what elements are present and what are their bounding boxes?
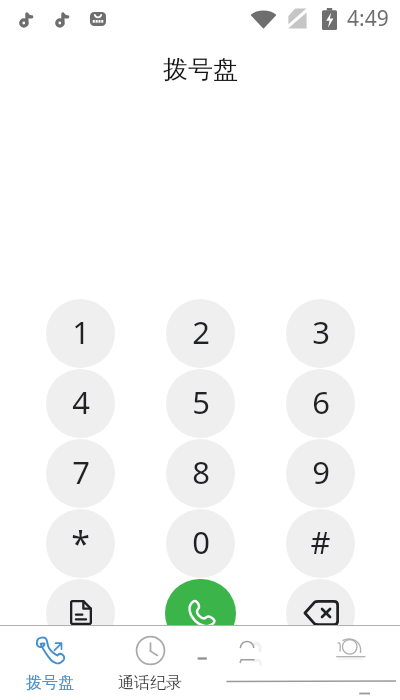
staticText: 8 (192, 451, 210, 493)
staticText: 9 (312, 451, 330, 493)
staticText: 拨号盘 (26, 673, 74, 693)
button[interactable]: Backspace (286, 579, 355, 648)
staticText: 拨号盘 (163, 54, 238, 85)
button[interactable]: 9 (286, 439, 355, 508)
staticText: 4:49 (347, 4, 389, 33)
button[interactable]: 3 (286, 299, 355, 368)
button[interactable]: 4 (46, 369, 115, 438)
button[interactable]: Note (46, 579, 115, 648)
button[interactable]: Tab (200, 625, 300, 700)
button[interactable]: 5 (166, 369, 235, 438)
staticText: 0 (192, 521, 210, 563)
staticText: # (310, 521, 331, 563)
staticText: 通话纪录 (118, 673, 182, 693)
button[interactable]: 7 (46, 439, 115, 508)
staticText: * (71, 520, 90, 566)
button[interactable]: Call (165, 579, 236, 648)
button[interactable]: # (286, 509, 355, 578)
button[interactable]: Tab (300, 625, 400, 700)
staticText: 6 (312, 381, 330, 423)
staticText: 7 (72, 451, 90, 493)
button[interactable]: 8 (166, 439, 235, 508)
staticText: 2 (192, 311, 210, 353)
button[interactable]: 2 (166, 299, 235, 368)
button[interactable]: * (46, 509, 115, 578)
staticText: 3 (312, 311, 330, 353)
staticText: 1 (72, 311, 90, 353)
button[interactable]: 通话纪录 (100, 625, 200, 700)
button[interactable]: 0 (166, 509, 235, 578)
button[interactable]: 6 (286, 369, 355, 438)
button[interactable]: 1 (46, 299, 115, 368)
staticText: 5 (192, 381, 210, 423)
button[interactable]: 拨号盘 (0, 625, 100, 700)
staticText: 4 (72, 381, 90, 423)
